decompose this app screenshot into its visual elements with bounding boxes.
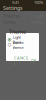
staticText: Light theme bbox=[12, 34, 23, 45]
staticText: CANCEL bbox=[14, 55, 29, 66]
button[interactable]: CANCEL bbox=[14, 55, 29, 66]
staticText: Theme bbox=[9, 28, 26, 35]
staticText: 100% bbox=[34, 0, 43, 5]
staticText: Settings bbox=[3, 4, 23, 12]
button[interactable]: OK bbox=[31, 58, 36, 63]
staticText: Theme bbox=[3, 12, 20, 20]
staticText: Dark theme bbox=[12, 39, 23, 50]
staticText: OK bbox=[31, 58, 36, 63]
staticText: Units bbox=[3, 18, 16, 26]
staticText: 9:41 bbox=[12, 0, 19, 5]
button[interactable]: Dark theme bbox=[6, 42, 39, 47]
button[interactable]: Light theme bbox=[6, 37, 39, 42]
